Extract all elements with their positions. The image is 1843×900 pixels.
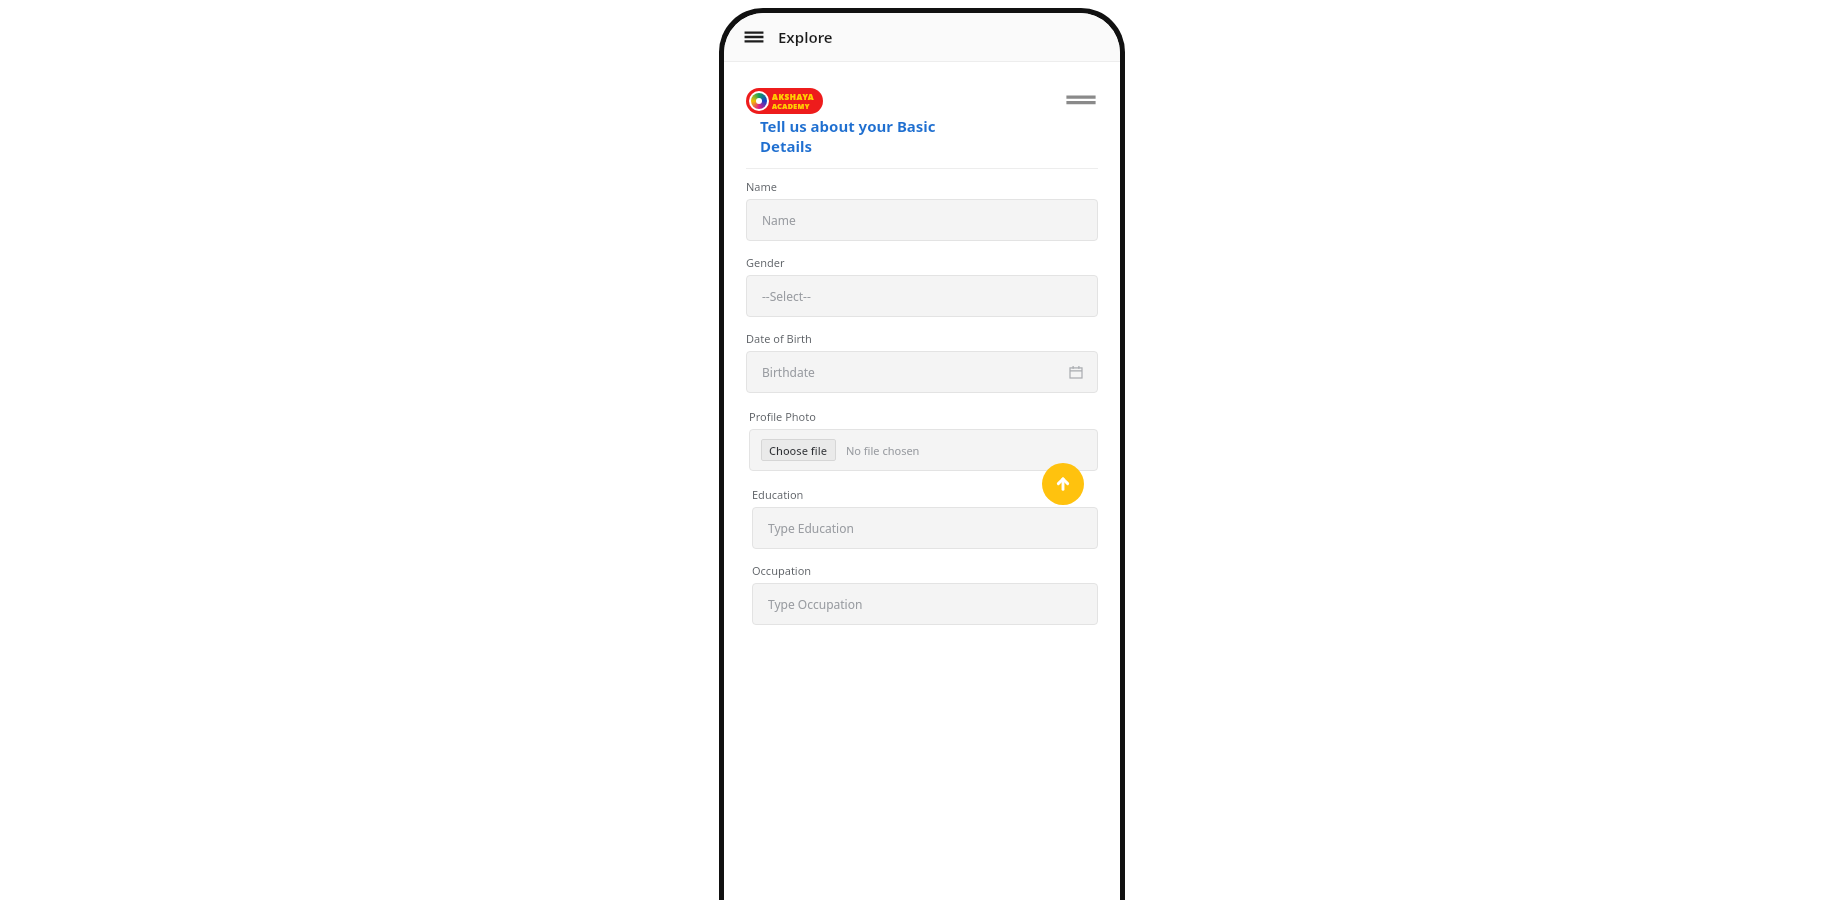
button[interactable]: Type Occupation bbox=[752, 583, 1098, 625]
staticText: Profile Photo bbox=[749, 409, 816, 424]
staticText: Name bbox=[762, 212, 796, 228]
button[interactable]: Choose file bbox=[749, 429, 1098, 471]
staticText: Details bbox=[760, 136, 812, 156]
staticText: Occupation bbox=[752, 563, 812, 578]
staticText: Explore bbox=[778, 27, 833, 47]
button[interactable]: Birthdate bbox=[746, 351, 1098, 393]
button[interactable]: --Select-- bbox=[746, 275, 1098, 317]
staticText: Type Education bbox=[768, 520, 854, 536]
staticText: AKSHAYA bbox=[772, 91, 815, 102]
staticText: ACADEMY bbox=[772, 102, 810, 112]
staticText: Gender bbox=[746, 255, 785, 270]
staticText: No file chosen bbox=[846, 443, 920, 458]
button[interactable]: Choose file bbox=[761, 439, 836, 461]
staticText: Education bbox=[752, 487, 804, 502]
staticText: Name bbox=[746, 179, 778, 194]
staticText: Choose file bbox=[769, 443, 828, 458]
staticText: Tell us about your Basic bbox=[760, 116, 936, 136]
button[interactable]: Akshaya Academy logo bbox=[749, 88, 820, 114]
staticText: Date of Birth bbox=[746, 331, 812, 346]
staticText: Birthdate bbox=[762, 364, 815, 380]
staticText: --Select-- bbox=[762, 288, 811, 304]
button[interactable]: Name bbox=[746, 199, 1098, 241]
button[interactable]: Site menu bbox=[1064, 88, 1098, 114]
button[interactable]: Scroll to top bbox=[1042, 463, 1084, 505]
button[interactable]: Open navigation menu bbox=[738, 21, 770, 53]
staticText: Type Occupation bbox=[768, 596, 863, 612]
button[interactable]: Type Education bbox=[752, 507, 1098, 549]
